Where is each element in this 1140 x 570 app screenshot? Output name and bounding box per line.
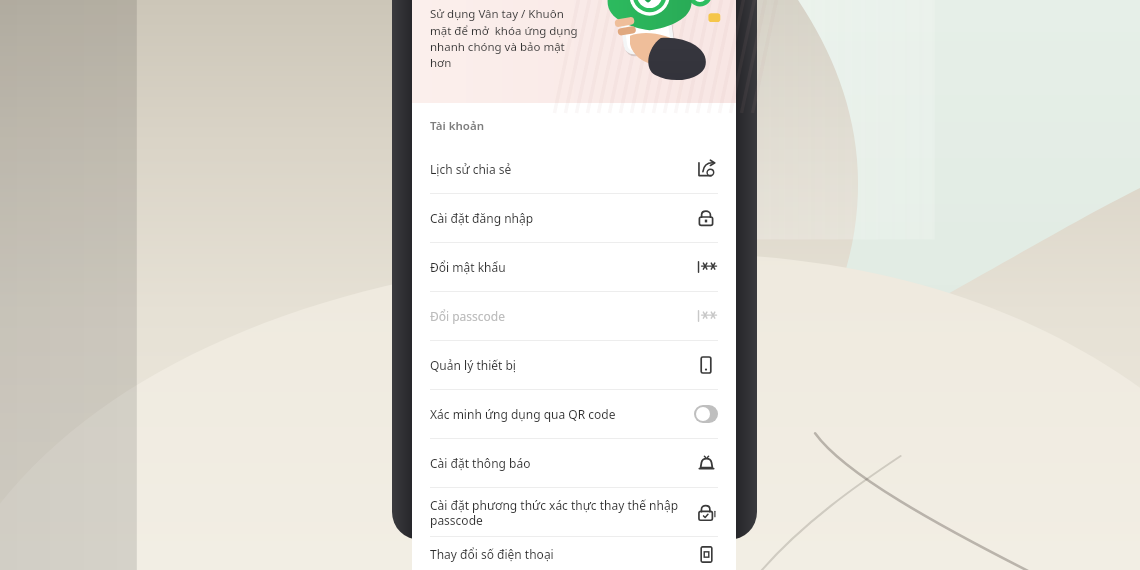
staticText: Cài đặt đăng nhập — [430, 210, 682, 226]
staticText: Đổi mật khẩu — [430, 259, 682, 275]
staticText: Thay đổi số điện thoại — [430, 546, 682, 562]
other: Đổi mật khẩu — [695, 305, 717, 327]
other: Đổi mật khẩu — [695, 256, 717, 278]
staticText: Tài khoản — [430, 118, 484, 134]
button[interactable]: Cài đặt đăng nhập — [412, 194, 736, 242]
staticText: Cài đặt phương thức xác thực thay thế nh… — [430, 497, 682, 528]
button[interactable]: Đổi passcode — [412, 292, 736, 340]
button[interactable]: Lịch sử chia sẻ — [412, 145, 736, 193]
staticText: Cài đặt thông báo — [430, 455, 682, 471]
button[interactable]: Xác minh ứng dụng qua QR code — [412, 390, 736, 438]
other: Thay đổi số điện thoại — [697, 545, 716, 564]
other: Lịch sử chia sẻ — [695, 158, 717, 180]
staticText: Lịch sử chia sẻ — [430, 161, 682, 177]
other: Cài đặt phương thức xác thực — [696, 502, 717, 523]
button[interactable]: Cài đặt phương thức xác thực thay thế nh… — [412, 488, 736, 536]
button[interactable]: Sử dụng Vân tay / Khuôn mặt để mở khóa ứ… — [412, 0, 736, 103]
staticText: Quản lý thiết bị — [430, 357, 682, 373]
button[interactable]: Xác minh ứng dụng qua QR code — [694, 405, 718, 423]
button[interactable]: Thay đổi số điện thoại — [412, 537, 736, 570]
other: Cài đặt đăng nhập — [696, 208, 716, 228]
button[interactable]: Đổi mật khẩu — [412, 243, 736, 291]
staticText: Đổi passcode — [430, 308, 682, 324]
staticText: Xác minh ứng dụng qua QR code — [430, 406, 682, 422]
staticText: Sử dụng Vân tay / Khuôn mặt để mở khóa ứ… — [430, 6, 605, 70]
other: Cài đặt thông báo — [696, 453, 717, 474]
button[interactable]: Quản lý thiết bị — [412, 341, 736, 389]
button[interactable]: Cài đặt thông báo — [412, 439, 736, 487]
other: Quản lý thiết bị — [696, 355, 716, 375]
